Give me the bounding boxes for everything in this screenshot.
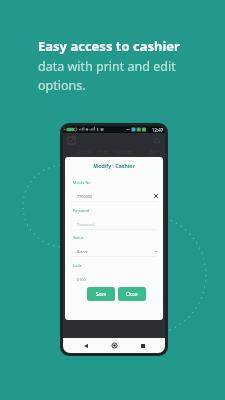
button[interactable]: Notifications xyxy=(152,136,161,145)
staticText: Password xyxy=(73,208,90,213)
staticText: data with print and edit options. xyxy=(38,58,176,94)
staticText: Mobile No xyxy=(73,180,91,185)
staticText: Easy access to cashier xyxy=(38,37,180,55)
staticText: Profile xyxy=(78,149,92,155)
button[interactable]: Save xyxy=(87,287,115,301)
button[interactable]: Recents xyxy=(137,340,148,351)
staticText: 5100 xyxy=(77,277,86,282)
staticText: 12:47 xyxy=(152,127,164,133)
staticText: Close xyxy=(126,291,138,297)
button[interactable]: Profile xyxy=(75,149,95,155)
button[interactable]: Account xyxy=(112,149,136,155)
staticText: Modify : Cashier xyxy=(65,162,163,169)
button[interactable]: Print xyxy=(95,149,112,155)
staticText: Print xyxy=(98,149,109,155)
staticText: Save xyxy=(96,291,107,297)
button[interactable]: Close xyxy=(118,287,146,301)
button[interactable]: Back xyxy=(80,340,91,351)
staticText: Password xyxy=(77,222,95,227)
staticText: Code xyxy=(73,263,82,268)
staticText: Status xyxy=(73,235,84,240)
button[interactable]: Menu xyxy=(67,136,76,145)
staticText: 7700000 xyxy=(77,194,93,199)
staticText: Account xyxy=(115,149,133,155)
staticText: Edit xyxy=(150,149,159,155)
button[interactable]: Home xyxy=(109,340,120,351)
staticText: Active xyxy=(77,249,88,254)
